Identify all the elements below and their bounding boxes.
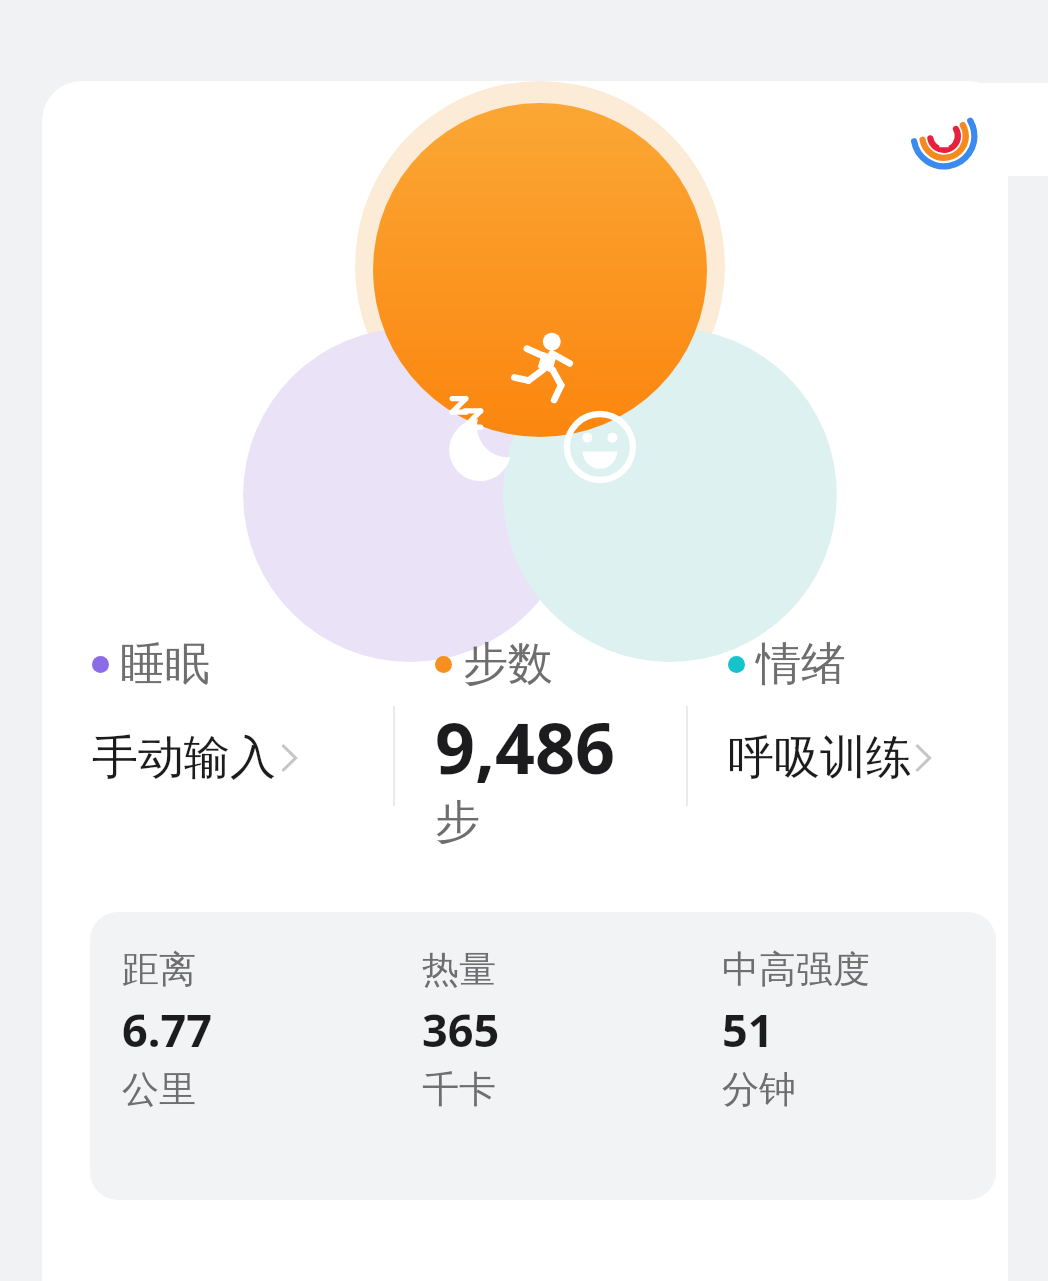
button[interactable]: 步数 bbox=[435, 636, 685, 851]
staticText: 热量 bbox=[422, 946, 496, 993]
staticText: 6.77 bbox=[122, 999, 212, 1060]
staticText: 睡眠 bbox=[120, 636, 210, 693]
staticText: 情绪 bbox=[756, 636, 846, 693]
staticText: 9,486 bbox=[435, 699, 616, 794]
staticText: 手动输入 bbox=[92, 729, 276, 787]
staticText: 分钟 bbox=[722, 1066, 796, 1113]
button[interactable]: 健康数据 bbox=[875, 83, 1048, 176]
staticText: 距离 bbox=[122, 946, 196, 993]
button[interactable]: 距离 bbox=[90, 912, 996, 1200]
staticText: 千卡 bbox=[422, 1066, 496, 1113]
staticText: 365 bbox=[422, 999, 500, 1060]
staticText: 公里 bbox=[122, 1066, 196, 1113]
staticText: 步 bbox=[435, 794, 480, 851]
staticText: 步数 bbox=[463, 636, 553, 693]
staticText: 中高强度 bbox=[722, 946, 870, 993]
staticText: 呼吸训练 bbox=[728, 729, 912, 787]
staticText: 51 bbox=[722, 999, 774, 1060]
button[interactable]: 睡眠 bbox=[92, 636, 392, 787]
button[interactable]: 情绪 bbox=[728, 636, 1008, 787]
